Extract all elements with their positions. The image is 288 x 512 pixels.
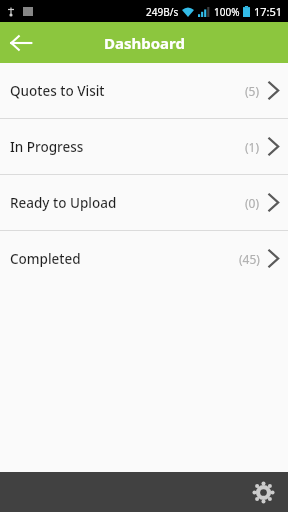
button[interactable]: Back [0, 22, 42, 63]
staticText: Quotes to Visit [10, 82, 245, 100]
staticText: (1) [245, 139, 260, 155]
staticText: Ready to Upload [10, 194, 245, 212]
button[interactable]: Completed [0, 231, 288, 286]
staticText: (5) [245, 83, 260, 99]
staticText: Completed [10, 250, 239, 268]
staticText: (0) [245, 195, 260, 211]
staticText: In Progress [10, 138, 245, 156]
button[interactable]: Ready to Upload [0, 175, 288, 230]
staticText: Dashboard [104, 33, 185, 53]
button[interactable]: Settings [246, 475, 280, 509]
staticText: 100% [214, 5, 240, 19]
staticText: 249B/s [146, 5, 179, 19]
button[interactable]: Quotes to Visit [0, 63, 288, 118]
staticText: 17:51 [254, 4, 283, 19]
button[interactable]: In Progress [0, 119, 288, 174]
staticText: (45) [239, 251, 260, 267]
